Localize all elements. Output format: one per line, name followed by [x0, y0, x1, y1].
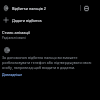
staticText: Стиль анімації: [2, 30, 30, 35]
staticText: За допомогою відбитка пальця ви зможете …: [2, 55, 97, 70]
button[interactable]: Додати відбиток: [0, 14, 100, 26]
button[interactable]: Відбитки пальців 2: [0, 2, 80, 14]
staticText: Додати відбиток: [12, 18, 42, 23]
staticText: Відбитки пальців 2: [12, 6, 46, 11]
button[interactable]: Settings: [81, 2, 92, 14]
staticText: Радіальні хвилі: [2, 36, 26, 40]
button[interactable]: Докладніше: [2, 72, 23, 77]
button[interactable]: Стиль анімації: [0, 28, 100, 41]
